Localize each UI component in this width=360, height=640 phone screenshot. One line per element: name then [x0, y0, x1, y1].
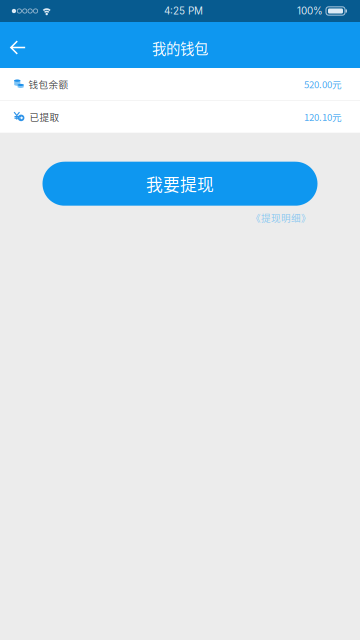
staticText: 钱包余额: [28, 77, 68, 91]
staticText: 《提现明细》: [251, 211, 311, 225]
staticText: 我的钱包: [152, 38, 208, 58]
button[interactable]: 已提取: [0, 101, 360, 133]
staticText: 我要提现: [146, 171, 214, 196]
button[interactable]: 钱包余额: [0, 68, 360, 100]
staticText: 520.00元: [304, 77, 342, 91]
button[interactable]: 我要提现: [42, 162, 317, 206]
button[interactable]: Back: [0, 22, 34, 68]
staticText: 100%: [297, 5, 323, 17]
staticText: 120.10元: [304, 110, 342, 124]
button[interactable]: 《提现明细》: [251, 211, 311, 225]
staticText: 4:25 PM: [164, 5, 203, 17]
staticText: 已提取: [29, 110, 59, 124]
